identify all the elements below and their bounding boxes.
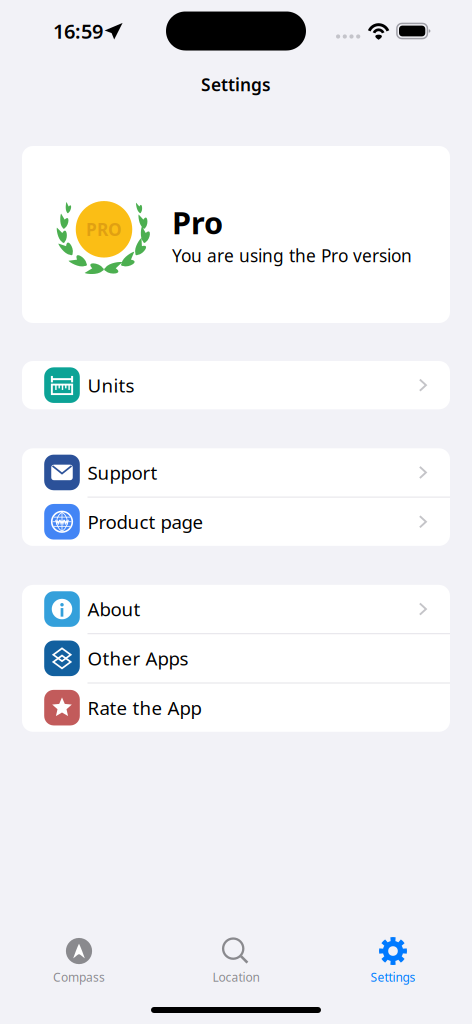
staticText: Settings	[201, 73, 271, 96]
staticText: Rate the App	[87, 695, 201, 720]
staticText: Compass	[53, 969, 105, 985]
staticText: 16:59	[53, 18, 103, 44]
staticText: Settings	[370, 969, 415, 985]
button[interactable]: Product page	[22, 498, 450, 546]
staticText: Other Apps	[87, 646, 188, 671]
button[interactable]: Other Apps	[22, 634, 450, 682]
staticText: Units	[87, 373, 134, 398]
staticText: Pro	[172, 202, 223, 243]
button[interactable]: Support	[22, 448, 450, 497]
button[interactable]: Compass	[0, 935, 157, 987]
button[interactable]: Settings	[314, 935, 471, 987]
button[interactable]: About	[22, 585, 450, 633]
staticText: You are using the Pro version	[172, 244, 412, 267]
staticText: Location	[212, 969, 259, 985]
button[interactable]: Units	[22, 361, 450, 409]
staticText: Support	[87, 460, 157, 485]
button[interactable]: Location	[157, 935, 314, 987]
staticText: About	[87, 597, 140, 621]
button[interactable]: Rate the App	[22, 683, 450, 732]
staticText: PRO	[86, 218, 122, 241]
staticText: Product page	[87, 509, 203, 534]
